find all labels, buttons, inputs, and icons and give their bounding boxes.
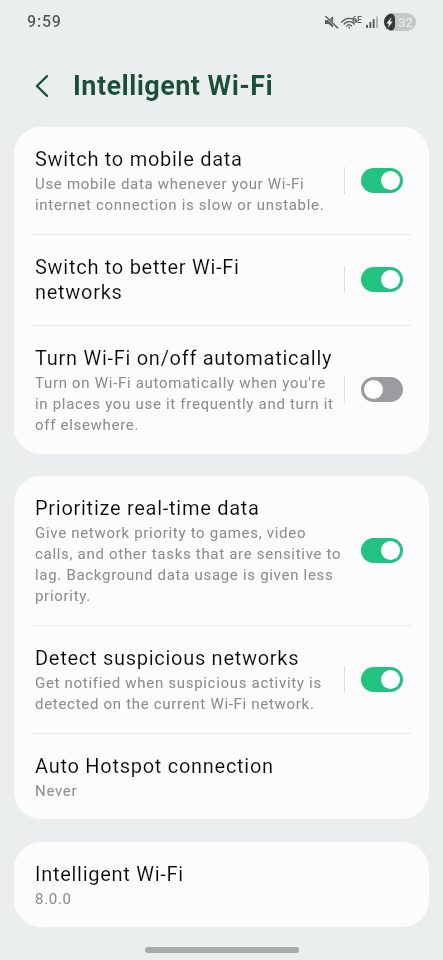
button[interactable]: Prioritize real-time data: [14, 476, 429, 626]
staticText: Never: [35, 782, 78, 800]
button[interactable]: On: [361, 168, 403, 193]
staticText: Detect suspicious networks: [35, 646, 300, 669]
staticText: Get notified when suspicious activity is…: [35, 674, 322, 712]
staticText: 6E: [352, 15, 363, 26]
staticText: Prioritize real-time data: [35, 496, 260, 519]
button[interactable]: Turn Wi-Fi on/off automatically: [14, 326, 429, 454]
staticText: Turn on Wi-Fi automatically when you're …: [35, 374, 334, 433]
button[interactable]: Switch to better Wi-Fi networks: [14, 235, 429, 326]
staticText: 9:59: [27, 12, 62, 31]
button[interactable]: Intelligent Wi-Fi: [14, 842, 429, 927]
button[interactable]: Detect suspicious networks: [14, 626, 429, 734]
staticText: Intelligent Wi-Fi: [73, 70, 274, 102]
button[interactable]: On: [361, 538, 403, 563]
staticText: 8.0.0: [35, 890, 72, 908]
staticText: Switch to better Wi-Fi networks: [35, 255, 240, 304]
button[interactable]: On: [361, 667, 403, 692]
button[interactable]: On: [361, 267, 403, 292]
button[interactable]: Off: [361, 377, 403, 402]
button[interactable]: Auto Hotspot connection: [14, 734, 429, 819]
staticText: Give network priority to games, video ca…: [35, 524, 342, 604]
button[interactable]: Back: [25, 69, 59, 103]
button[interactable]: Switch to mobile data: [14, 127, 429, 235]
staticText: Auto Hotspot connection: [35, 754, 274, 777]
staticText: Switch to mobile data: [35, 147, 243, 170]
staticText: Intelligent Wi-Fi: [35, 862, 184, 885]
staticText: Turn Wi-Fi on/off automatically: [35, 346, 333, 369]
staticText: Use mobile data whenever your Wi-Fi inte…: [35, 175, 325, 213]
staticText: 32: [398, 15, 413, 30]
